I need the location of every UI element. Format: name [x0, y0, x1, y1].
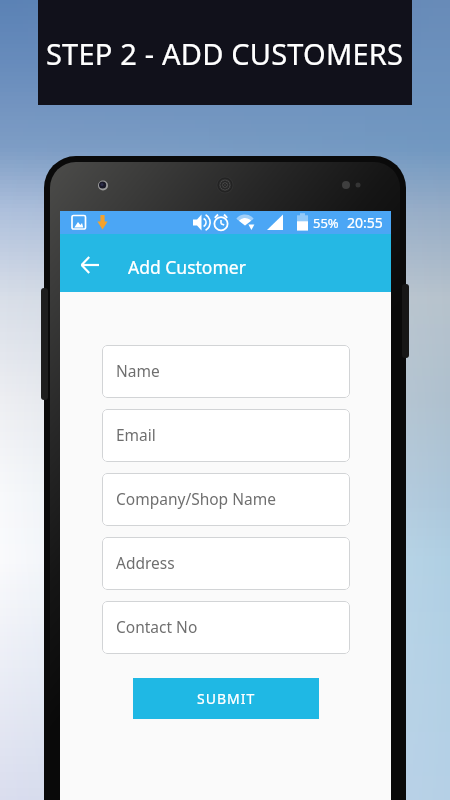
button[interactable]: SUBMIT — [133, 678, 319, 719]
staticText: SUBMIT — [197, 689, 256, 708]
staticText: Email — [116, 424, 156, 445]
staticText: Name — [116, 360, 160, 381]
button[interactable]: Back — [70, 245, 110, 285]
staticText: Contact No — [116, 616, 198, 637]
button[interactable]: Contact No — [102, 601, 350, 654]
staticText: Address — [116, 552, 175, 573]
staticText: Company/Shop Name — [116, 488, 276, 509]
button[interactable]: Company/Shop Name — [102, 473, 350, 526]
staticText: Add Customer — [128, 255, 246, 279]
staticText: 20:55 — [347, 213, 383, 232]
button[interactable]: Address — [102, 537, 350, 590]
button[interactable]: Name — [102, 345, 350, 398]
button[interactable]: Email — [102, 409, 350, 462]
staticText: STEP 2 - ADD CUSTOMERS — [46, 34, 404, 73]
staticText: 55% — [313, 214, 339, 232]
